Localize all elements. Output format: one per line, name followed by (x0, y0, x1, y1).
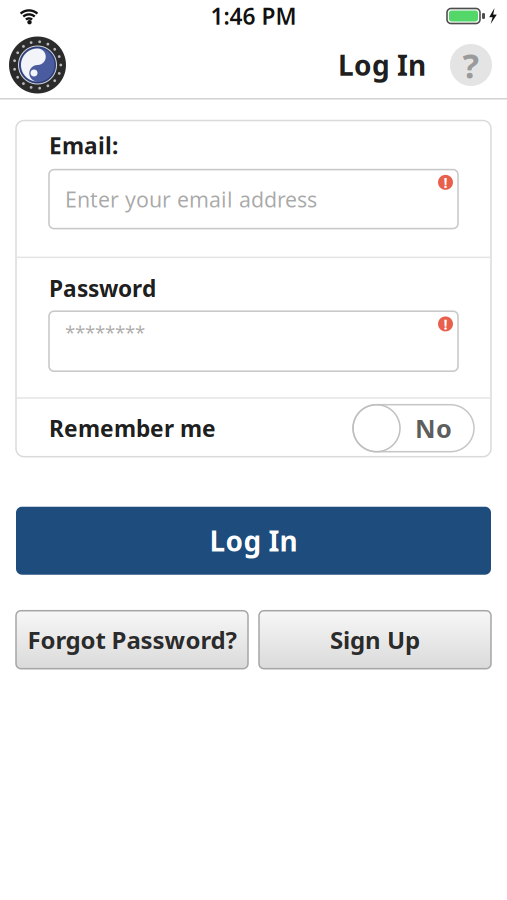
staticText: Enter your email address (65, 185, 317, 213)
button[interactable]: Log In (16, 507, 491, 575)
staticText: ! (443, 314, 447, 334)
staticText: ! (443, 173, 447, 192)
staticText: Log In (338, 46, 426, 84)
button[interactable]: Forgot Password? (16, 611, 248, 669)
staticText: ******** (65, 320, 145, 345)
staticText: Forgot Password? (27, 624, 236, 656)
staticText: Log In (209, 522, 297, 559)
staticText: No (415, 411, 452, 445)
button[interactable]: Help (450, 42, 492, 88)
staticText: Remember me (49, 413, 216, 443)
staticText: Password (49, 273, 156, 303)
staticText: 1:46 PM (210, 1, 296, 31)
button[interactable]: Sign Up (259, 611, 491, 669)
staticText: Email: (49, 130, 118, 161)
staticText: Sign Up (330, 624, 420, 656)
staticText: ? (462, 42, 479, 88)
button[interactable]: Remember me, off (353, 405, 474, 452)
